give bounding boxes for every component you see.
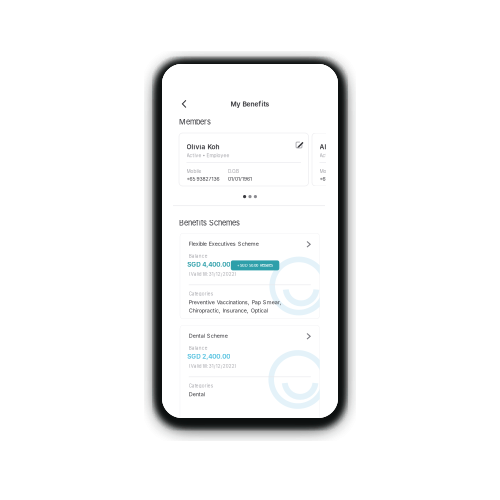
staticText: Alan Lim [319,143,348,151]
staticText: 01/01/1961 [228,176,252,182]
staticText: Mobile [319,168,334,174]
staticText: Chiropractic, Insurance, Optical [189,307,268,314]
button[interactable]: Flexible Executives Scheme [180,233,320,255]
staticText: Active • Employee [186,152,229,158]
button[interactable]: Back [176,94,192,113]
staticText: +65 93827136 [186,176,219,182]
staticText: Dental [189,391,205,398]
staticText: SGD 4,400.00 [187,261,230,268]
staticText: (Valid till: 31/12/2022) [189,271,237,277]
button[interactable]: Dental Scheme [180,325,320,347]
staticText: Categories [189,291,213,296]
staticText: My Benefits [230,100,269,108]
button[interactable]: Edit Olivia Koh [293,139,306,150]
staticText: Members [179,117,211,126]
staticText: + SGD 50.00 Rebates [237,263,273,268]
staticText: Categories [189,383,213,388]
staticText: Mobile [186,168,201,174]
staticText: Balance [189,345,208,351]
staticText: Flexible Executives Scheme [189,240,259,247]
staticText: Dental Scheme [189,332,228,339]
staticText: (Valid till: 31/12/2022) [189,363,237,369]
staticText: Active • Employee [319,152,362,158]
staticText: SGD 2,400.00 [187,353,230,360]
staticText: +65 81726354 [319,176,352,182]
staticText: Olivia Koh [186,143,219,151]
staticText: D.O.B [228,168,239,174]
staticText: Benefits Schemes [179,218,240,227]
staticText: Preventive Vaccinations, Pap Smear, [189,299,282,306]
staticText: Balance [189,253,208,259]
